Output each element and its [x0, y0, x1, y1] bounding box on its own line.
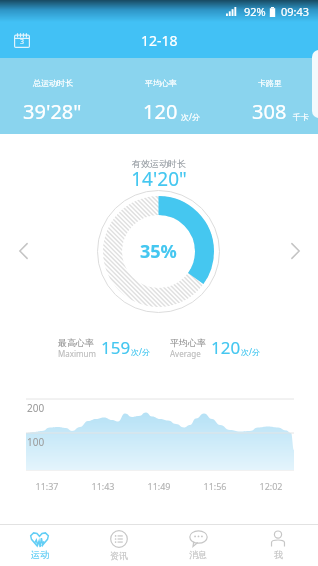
- staticText: 120: [143, 98, 178, 125]
- staticText: 200: [27, 401, 45, 415]
- button[interactable]: 资讯: [79, 524, 158, 566]
- staticText: 39'28": [23, 98, 82, 125]
- button[interactable]: 运动: [0, 524, 79, 566]
- staticText: 12-18: [141, 31, 178, 50]
- staticText: 次/分: [241, 346, 260, 357]
- staticText: 92%: [244, 4, 266, 19]
- staticText: 11:49: [131, 480, 187, 492]
- button[interactable]: Next day: [280, 236, 310, 266]
- staticText: 100: [27, 435, 45, 449]
- staticText: 11:56: [187, 480, 243, 492]
- button[interactable]: 我: [238, 524, 318, 566]
- staticText: 我: [274, 549, 283, 560]
- staticText: 14'20": [0, 166, 318, 192]
- staticText: 有效运动时长: [0, 158, 318, 169]
- staticText: 千卡: [293, 112, 309, 122]
- staticText: 159: [101, 336, 131, 359]
- staticText: 次/分: [181, 111, 200, 122]
- staticText: 卡路里: [258, 78, 282, 88]
- button[interactable]: 消息: [158, 524, 238, 566]
- staticText: 3: [20, 37, 25, 47]
- staticText: 308: [252, 98, 287, 125]
- staticText: 12:02: [243, 480, 299, 492]
- staticText: 消息: [189, 549, 207, 560]
- staticText: Average: [170, 348, 201, 359]
- staticText: 平均心率: [145, 78, 177, 88]
- staticText: 资讯: [110, 550, 128, 561]
- staticText: 次/分: [131, 346, 150, 357]
- staticText: 最高心率: [58, 337, 94, 348]
- staticText: 09:43: [281, 4, 310, 19]
- staticText: 35%: [140, 239, 177, 264]
- staticText: 平均心率: [170, 337, 206, 348]
- staticText: Maximum: [58, 348, 96, 359]
- staticText: 120: [211, 336, 241, 359]
- staticText: 11:37: [19, 480, 75, 492]
- button[interactable]: Previous day: [8, 236, 38, 266]
- button[interactable]: Calendar: [7, 25, 37, 55]
- staticText: 11:43: [75, 480, 131, 492]
- staticText: 总运动时长: [33, 78, 73, 88]
- staticText: 运动: [31, 549, 49, 560]
